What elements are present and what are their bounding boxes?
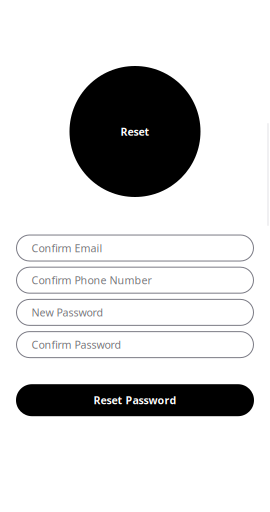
button[interactable]: Confirm Phone Number [16,267,253,293]
staticText: Confirm Email [31,241,102,255]
staticText: Confirm Password [31,337,121,352]
staticText: Confirm Phone Number [31,273,151,287]
staticText: Reset Password [93,393,176,407]
staticText: New Password [31,305,103,319]
button[interactable]: New Password [16,299,253,325]
staticText: Reset [120,124,149,139]
button[interactable]: Confirm Email [16,235,253,261]
button[interactable]: Reset Password [16,384,254,416]
button[interactable]: Confirm Password [16,332,253,358]
